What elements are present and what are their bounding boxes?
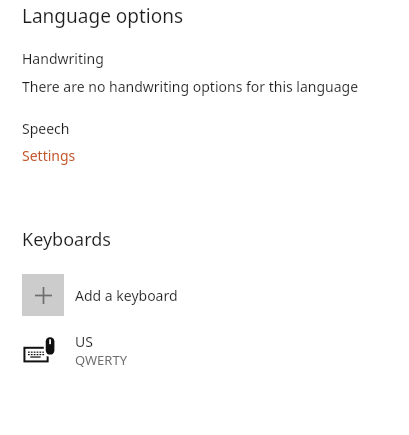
staticText: Add a keyboard — [75, 286, 178, 305]
button[interactable]: Settings — [22, 146, 76, 165]
button[interactable]: US QWERTY keyboard layout — [0, 332, 409, 369]
staticText: Settings — [22, 146, 76, 165]
staticText: Speech — [22, 119, 70, 138]
staticText: There are no handwriting options for thi… — [22, 77, 359, 96]
button[interactable]: Add a keyboard — [0, 274, 409, 316]
staticText: QWERTY — [75, 351, 128, 369]
other: US QWERTY keyboard layout — [22, 334, 64, 368]
staticText: Handwriting — [22, 49, 104, 68]
staticText: Keyboards — [22, 227, 111, 252]
staticText: Language options — [22, 3, 184, 29]
staticText: US — [75, 332, 93, 351]
